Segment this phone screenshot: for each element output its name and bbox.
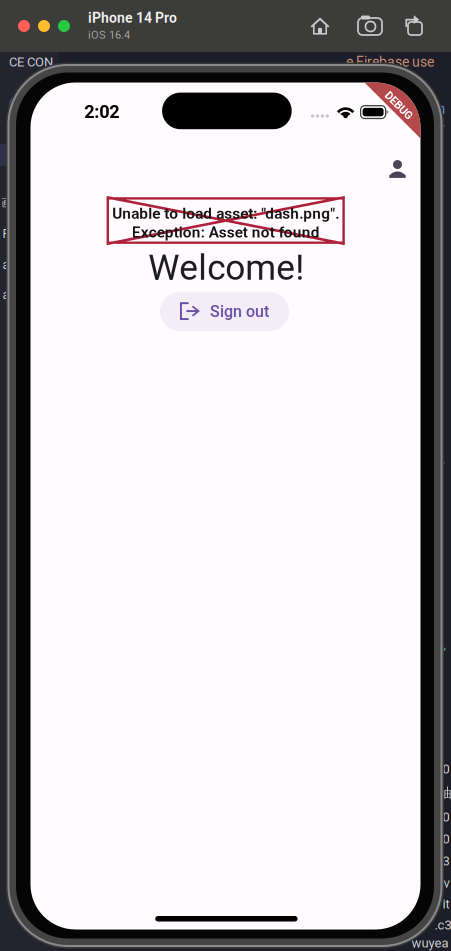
staticText: Unable to load asset: "dash.png".: [112, 204, 339, 222]
staticText: Welcome!: [148, 247, 304, 288]
button[interactable]: Zoom window: [58, 20, 70, 32]
staticText: ~: [437, 641, 447, 657]
staticText: CE CON: [9, 54, 53, 70]
staticText: it: [442, 896, 449, 912]
button[interactable]: Account: [373, 153, 421, 183]
staticText: 0: [442, 809, 449, 825]
staticText: in: [434, 101, 445, 117]
staticText: Sign out: [210, 302, 269, 321]
staticText: 0: [442, 831, 449, 847]
staticText: wuyea: [411, 935, 448, 951]
staticText: 0: [442, 761, 449, 777]
button[interactable]: Sign out: [160, 292, 289, 331]
button[interactable]: Record screen: [403, 14, 427, 38]
staticText: iOS 16.4: [88, 29, 130, 41]
staticText: F: [2, 227, 9, 241]
staticText: DEBUG: [381, 99, 415, 112]
staticText: a: [2, 258, 9, 272]
staticText: (: [8, 97, 13, 113]
staticText: 紬: [438, 785, 451, 801]
staticText: a: [2, 288, 9, 302]
staticText: 2:02: [84, 101, 119, 122]
staticText: .c3: [434, 917, 451, 933]
staticText: .v: [440, 875, 449, 891]
staticText: 3: [442, 853, 449, 869]
staticText: Exception: Asset not found: [132, 223, 320, 241]
button[interactable]: Home: [308, 14, 332, 38]
button[interactable]: Screenshot: [358, 14, 382, 38]
button[interactable]: Close window: [18, 20, 30, 32]
staticText: iPhone 14 Pro: [88, 10, 177, 26]
staticText: e Firebase use: [346, 54, 434, 70]
button[interactable]: Minimize window: [38, 20, 50, 32]
staticText: 画: [1, 196, 12, 210]
